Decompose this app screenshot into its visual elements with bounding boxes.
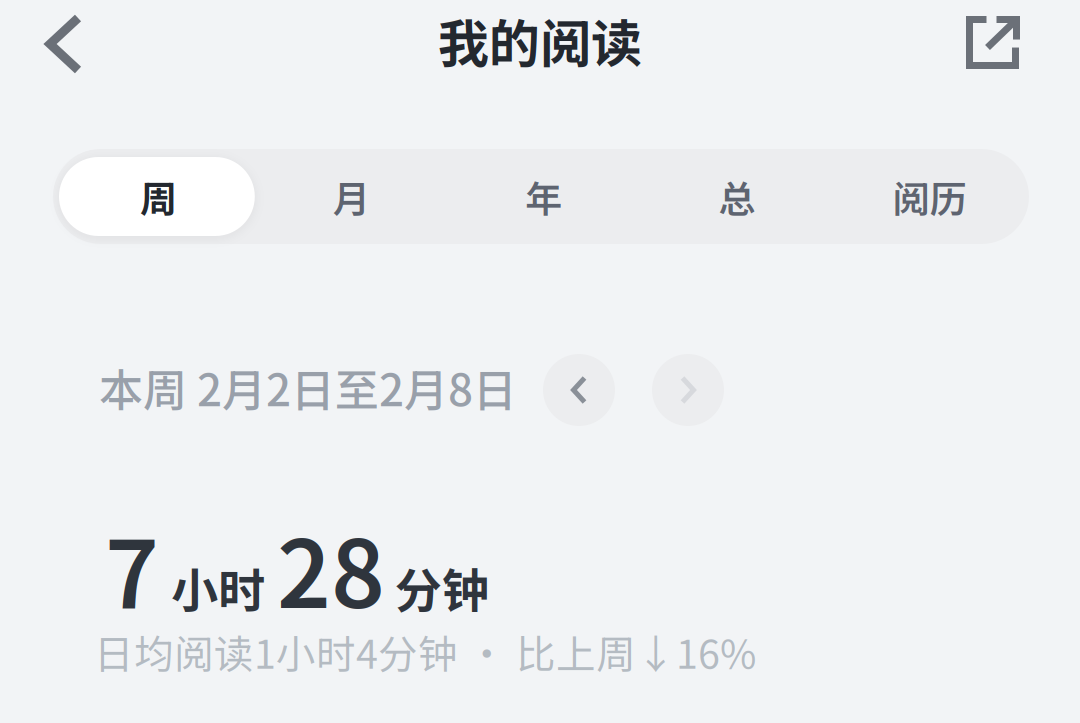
staticText: 日均阅读1小时4分钟 · 比上周↓16% bbox=[94, 623, 756, 680]
button[interactable]: 周 bbox=[62, 149, 255, 244]
button[interactable]: Share bbox=[943, 0, 1043, 88]
staticText: 阅历 bbox=[893, 170, 967, 223]
staticText: 总 bbox=[718, 170, 755, 223]
staticText: 我的阅读 bbox=[438, 3, 642, 77]
button[interactable]: 年 bbox=[448, 149, 640, 244]
staticText: 28 bbox=[277, 500, 385, 635]
button[interactable]: Previous week bbox=[543, 354, 615, 426]
button[interactable]: 阅历 bbox=[833, 149, 1026, 244]
staticText: 周 bbox=[140, 170, 177, 223]
button[interactable]: 月 bbox=[255, 149, 448, 244]
staticText: 年 bbox=[525, 170, 562, 223]
staticText: 本周 2月2日至2月8日 bbox=[99, 355, 517, 419]
staticText: 小时 bbox=[171, 553, 265, 621]
staticText: 分钟 bbox=[395, 553, 489, 621]
button[interactable]: Back bbox=[14, 0, 114, 89]
button[interactable]: Next week bbox=[652, 354, 724, 426]
staticText: 月 bbox=[333, 170, 370, 223]
staticText: 7 bbox=[105, 500, 159, 635]
button[interactable]: 总 bbox=[640, 149, 833, 244]
